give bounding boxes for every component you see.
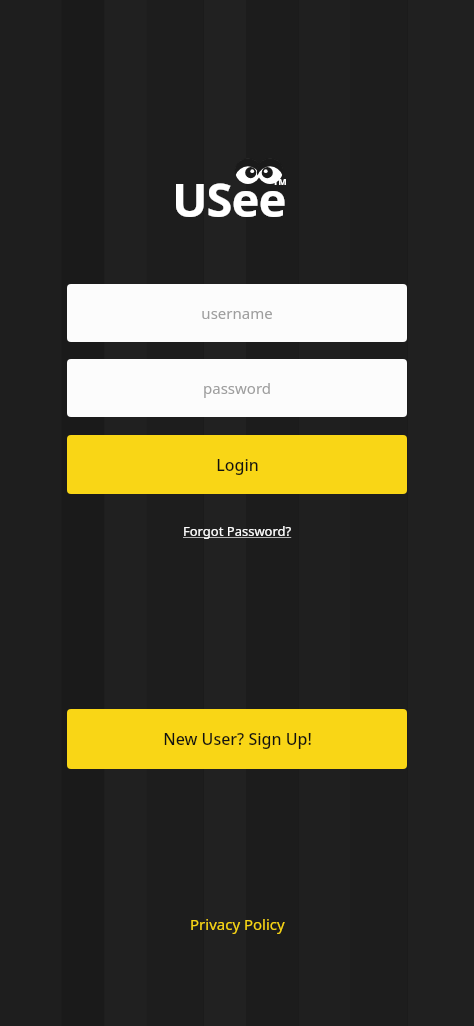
staticText: Login: [216, 454, 259, 476]
staticText: Forgot Password?: [183, 522, 292, 540]
button[interactable]: New User? Sign Up!: [67, 709, 407, 769]
button[interactable]: username: [67, 284, 407, 342]
staticText: Privacy Policy: [190, 914, 285, 934]
staticText: username: [201, 303, 273, 323]
button[interactable]: password: [67, 359, 407, 417]
staticText: TM: [273, 175, 287, 187]
staticText: password: [203, 378, 271, 398]
button[interactable]: Forgot Password?: [177, 519, 298, 543]
button[interactable]: Privacy Policy: [182, 910, 293, 938]
staticText: New User? Sign Up!: [163, 728, 312, 750]
staticText: USee: [172, 167, 286, 231]
button[interactable]: Login: [67, 435, 407, 494]
